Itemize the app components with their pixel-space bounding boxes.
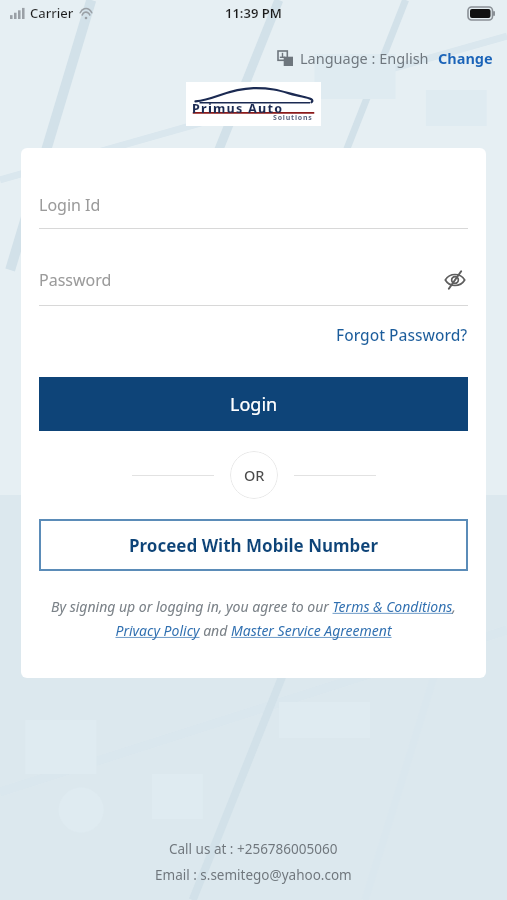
staticText: Email : s.semitego@yahoo.com xyxy=(155,866,352,884)
staticText: 11:39 PM xyxy=(225,4,282,22)
button[interactable]: Login Id xyxy=(39,194,101,216)
button[interactable]: Show password xyxy=(442,267,468,293)
staticText: Primus Auto xyxy=(192,100,284,117)
staticText: Change xyxy=(438,48,493,68)
button[interactable]: Login xyxy=(39,377,468,431)
staticText: Language : English xyxy=(300,48,429,68)
staticText: Proceed With Mobile Number xyxy=(129,534,379,557)
button[interactable]: Change xyxy=(438,48,493,68)
button[interactable]: Forgot Password? xyxy=(336,324,468,345)
staticText: Forgot Password? xyxy=(336,324,468,345)
button[interactable]: Proceed With Mobile Number xyxy=(39,519,468,571)
button[interactable]: Password xyxy=(39,269,112,291)
staticText: Carrier xyxy=(30,4,74,22)
staticText: Solutions xyxy=(273,113,313,123)
staticText: By signing up or logging in, you agree t… xyxy=(39,597,468,640)
staticText: Call us at : +256786005060 xyxy=(169,840,338,858)
staticText: Login xyxy=(230,392,278,417)
staticText: OR xyxy=(244,465,265,485)
